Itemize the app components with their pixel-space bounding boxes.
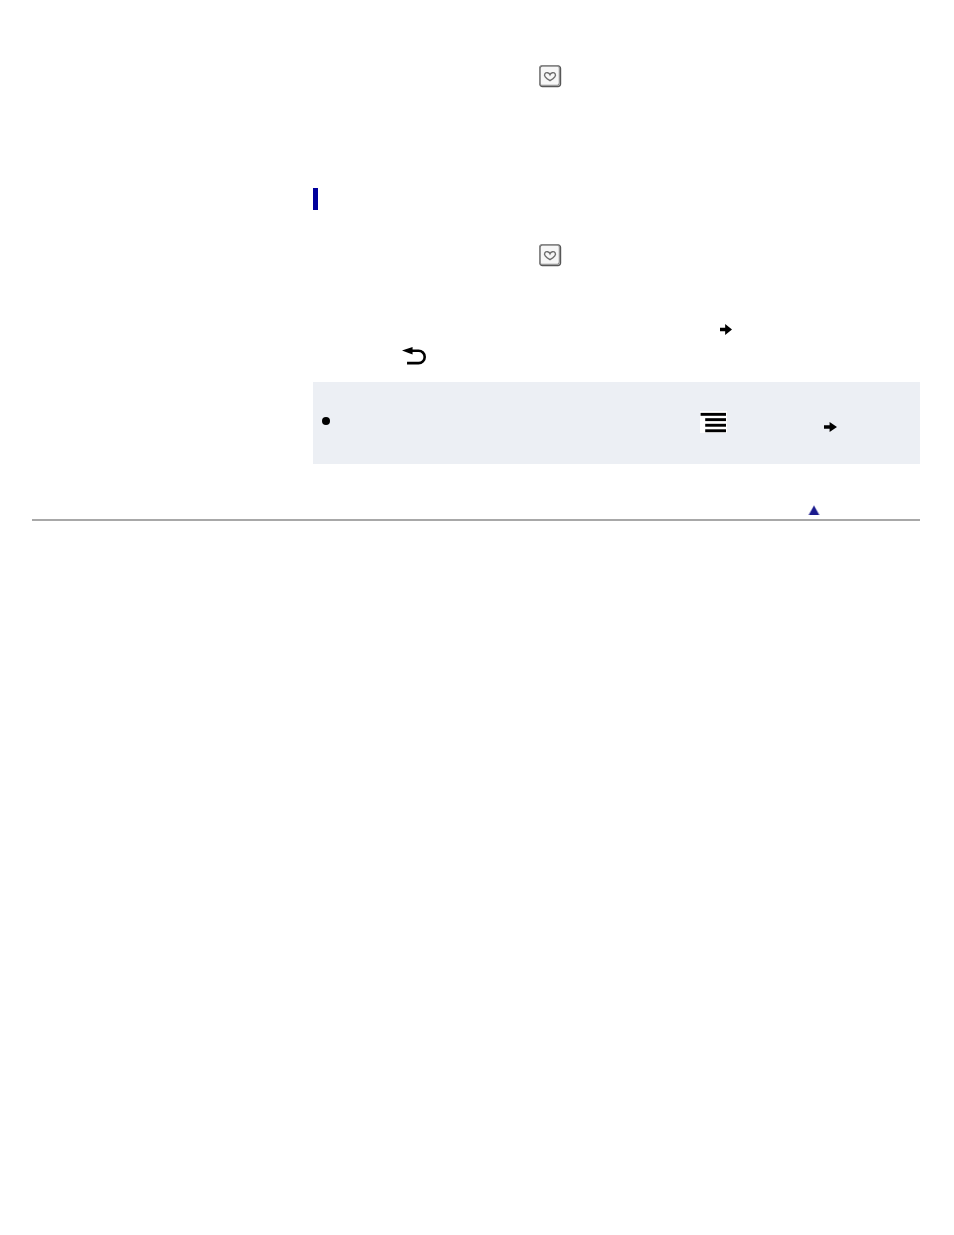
button[interactable]: Back to top: [808, 505, 820, 515]
button[interactable]: Next: [720, 324, 732, 335]
button[interactable]: Next: [824, 422, 837, 432]
button[interactable]: Article: [700, 411, 727, 433]
button[interactable]: Favorite: [539, 65, 561, 87]
button[interactable]: Article: [313, 382, 920, 464]
button[interactable]: Undo: [402, 347, 426, 364]
button[interactable]: Favorite: [539, 244, 561, 266]
